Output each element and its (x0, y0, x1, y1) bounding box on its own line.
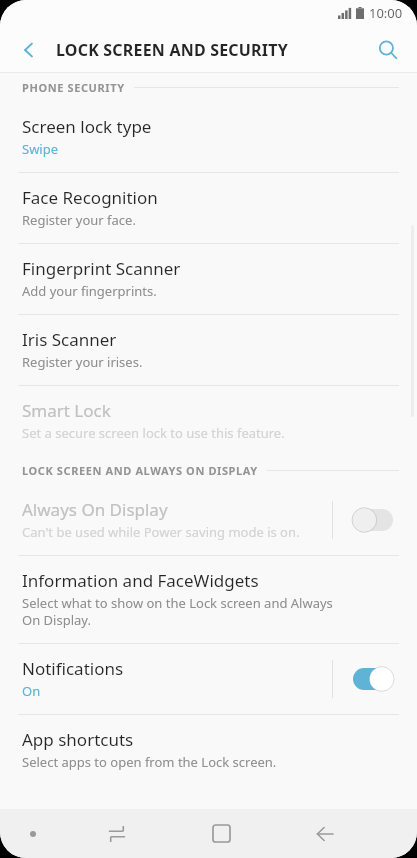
staticText: Add your fingerprints. (22, 282, 157, 300)
staticText: Always On Display (22, 498, 168, 521)
staticText: Information and FaceWidgets (22, 569, 259, 592)
button[interactable]: Notifications (351, 664, 395, 694)
button[interactable]: Search (367, 29, 409, 71)
staticText: LOCK SCREEN AND ALWAYS ON DISPLAY (22, 463, 258, 478)
staticText: 10:00 (369, 4, 403, 22)
button[interactable]: Always On Display (0, 485, 417, 555)
staticText: App shortcuts (22, 728, 134, 751)
button[interactable]: Screen lock type (0, 102, 417, 172)
staticText: Select apps to open from the Lock screen… (22, 753, 277, 771)
button[interactable]: Iris Scanner (0, 315, 417, 385)
button[interactable]: App shortcuts (0, 715, 417, 785)
staticText: On (22, 682, 41, 700)
staticText: Register your face. (22, 211, 136, 229)
staticText: Iris Scanner (22, 328, 117, 351)
staticText: Face Recognition (22, 186, 158, 209)
staticText: PHONE SECURITY (22, 80, 125, 95)
button[interactable]: Information and FaceWidgets (0, 556, 417, 643)
button[interactable]: Always On Display (351, 505, 395, 535)
button[interactable]: Face Recognition (0, 173, 417, 243)
button[interactable]: Notifications (0, 644, 417, 714)
button[interactable]: Fingerprint Scanner (0, 244, 417, 314)
button[interactable]: Back (273, 809, 377, 858)
staticText: Register your irises. (22, 353, 143, 371)
staticText: Set a secure screen lock to use this fea… (22, 424, 285, 442)
staticText: LOCK SCREEN AND SECURITY (56, 39, 288, 61)
button[interactable]: Smart Lock (0, 386, 417, 456)
staticText: Screen lock type (22, 115, 152, 138)
staticText: Can't be used while Power saving mode is… (22, 523, 300, 541)
staticText: Select what to show on the Lock screen a… (22, 594, 333, 629)
button[interactable]: Recents (65, 809, 169, 858)
staticText: Smart Lock (22, 399, 111, 422)
staticText: Swipe (22, 140, 59, 158)
button[interactable]: Back (8, 29, 50, 71)
button[interactable]: Home (169, 809, 273, 858)
button[interactable]: Indicator (0, 809, 65, 858)
staticText: Fingerprint Scanner (22, 257, 181, 280)
staticText: Notifications (22, 657, 124, 680)
